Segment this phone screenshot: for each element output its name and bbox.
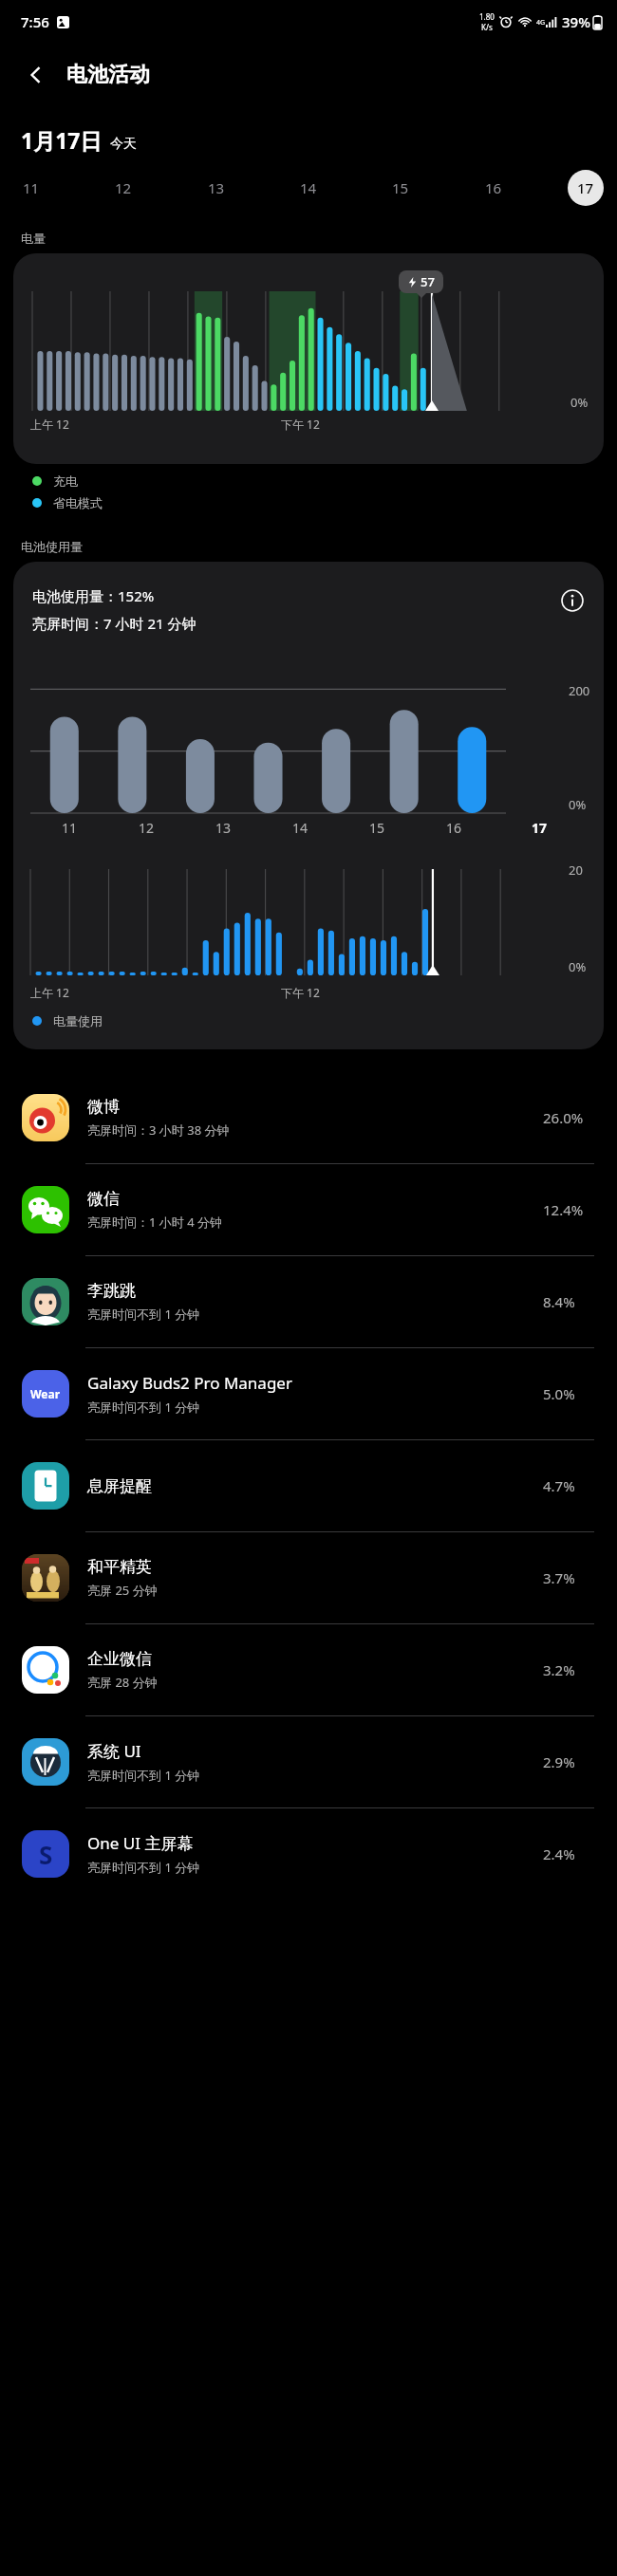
staticText: 亮屏 25 分钟 (87, 1582, 158, 1599)
staticText: 电池使用量 (21, 539, 83, 554)
staticText: 息屏提醒 (87, 1476, 152, 1496)
staticText: 亮屏时间：3 小时 38 分钟 (87, 1121, 230, 1139)
staticText: 2.4% (543, 1844, 596, 1863)
staticText: 15 (369, 819, 385, 837)
staticText: 7:56 (21, 12, 49, 31)
staticText: Wear (30, 1386, 61, 1401)
staticText: 16 (485, 178, 502, 197)
button[interactable]: 15 (383, 170, 419, 206)
button[interactable]: 和平精英 (0, 1532, 617, 1623)
staticText: 3.2% (543, 1660, 596, 1679)
button[interactable]: 系统 UI (0, 1716, 617, 1807)
staticText: 0% (569, 958, 587, 975)
staticText: 企业微信 (87, 1649, 152, 1669)
button[interactable]: 微信 (0, 1164, 617, 1255)
staticText: 13 (215, 819, 232, 837)
staticText: Galaxy Buds2 Pro Manager (87, 1372, 292, 1394)
staticText: 亮屏时间不到 1 分钟 (87, 1399, 200, 1416)
staticText: 13 (208, 178, 225, 197)
staticText: 11 (62, 819, 78, 837)
staticText: 电池活动 (66, 62, 150, 88)
staticText: 12 (115, 178, 132, 197)
button[interactable]: S (0, 1808, 617, 1900)
staticText: 电量使用 (53, 1013, 103, 1029)
staticText: 8.4% (543, 1292, 596, 1311)
staticText: 26.0% (543, 1108, 596, 1127)
staticText: 2.9% (543, 1752, 596, 1771)
staticText: One UI 主屏幕 (87, 1832, 194, 1854)
button[interactable]: 14 (290, 170, 327, 206)
button[interactable]: Info (558, 586, 587, 615)
staticText: 今天 (110, 136, 137, 153)
staticText: 亮屏时间不到 1 分钟 (87, 1306, 200, 1323)
staticText: 4.7% (543, 1476, 596, 1495)
staticText: 17 (577, 178, 594, 197)
staticText: 下午 12 (281, 985, 320, 1000)
staticText: 5.0% (543, 1384, 596, 1403)
staticText: K/s (481, 22, 493, 32)
staticText: 微信 (87, 1189, 120, 1209)
staticText: 和平精英 (87, 1557, 152, 1577)
staticText: 12.4% (543, 1200, 596, 1219)
button[interactable]: 12 (105, 170, 141, 206)
button[interactable]: 李跳跳 (0, 1256, 617, 1347)
button[interactable]: 微博 (0, 1072, 617, 1163)
staticText: 亮屏时间不到 1 分钟 (87, 1859, 200, 1876)
staticText: 15 (392, 178, 409, 197)
staticText: 电量 (21, 231, 46, 246)
staticText: 下午 12 (281, 417, 320, 432)
staticText: 微博 (87, 1097, 120, 1117)
button[interactable]: 13 (198, 170, 234, 206)
button[interactable]: 企业微信 (0, 1624, 617, 1715)
staticText: 3.7% (543, 1568, 596, 1587)
staticText: 16 (446, 819, 462, 837)
staticText: 亮屏 28 分钟 (87, 1674, 158, 1691)
button[interactable]: 息屏提醒 (0, 1440, 617, 1531)
staticText: 系统 UI (87, 1740, 141, 1762)
staticText: 充电 (53, 473, 78, 489)
staticText: S (39, 1838, 53, 1871)
staticText: 4G (536, 18, 546, 28)
staticText: 200 (569, 682, 590, 699)
button[interactable]: 0% (13, 253, 604, 464)
staticText: 14 (300, 178, 317, 197)
button[interactable]: 16 (476, 170, 512, 206)
staticText: 0% (569, 796, 587, 813)
staticText: 亮屏时间不到 1 分钟 (87, 1767, 200, 1784)
staticText: 57 (421, 273, 435, 290)
staticText: 亮屏时间：7 小时 21 分钟 (32, 614, 196, 633)
staticText: 17 (532, 819, 548, 837)
button[interactable]: 17 (568, 170, 604, 206)
staticText: 14 (292, 819, 308, 837)
button[interactable]: Wear (0, 1348, 617, 1439)
staticText: 12 (139, 819, 155, 837)
staticText: 上午 12 (30, 985, 69, 1000)
staticText: 1月17日 (21, 125, 103, 155)
staticText: 上午 12 (30, 417, 69, 432)
staticText: 电池使用量：152% (32, 586, 155, 605)
staticText: 1.80 (479, 11, 495, 22)
staticText: 省电模式 (53, 495, 103, 510)
staticText: 20 (569, 862, 583, 879)
staticText: 亮屏时间：1 小时 4 分钟 (87, 1214, 223, 1231)
staticText: 11 (23, 178, 40, 197)
staticText: 0% (570, 394, 589, 411)
button[interactable]: Back (15, 54, 57, 96)
button[interactable]: 11 (13, 170, 49, 206)
staticText: 李跳跳 (87, 1281, 136, 1301)
staticText: 39% (562, 12, 590, 31)
